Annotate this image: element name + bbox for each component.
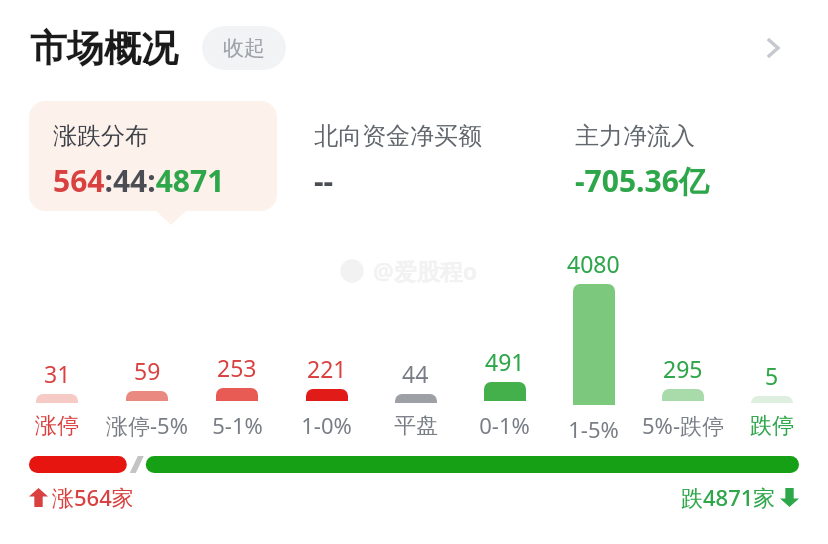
button[interactable]: 491 xyxy=(460,346,549,440)
button[interactable]: 涨跌分布 xyxy=(29,101,277,211)
button[interactable]: 5 xyxy=(727,360,816,440)
staticText: 564:44:4871 xyxy=(53,160,225,201)
button[interactable]: 4080 xyxy=(549,248,638,440)
staticText: 44 xyxy=(402,358,429,389)
staticText: 跌4871家 xyxy=(681,482,776,512)
staticText: 31 xyxy=(44,358,71,389)
staticText: @爱股程o xyxy=(373,255,478,286)
staticText: 涨停-5% xyxy=(106,410,188,440)
staticText: 跌停 xyxy=(750,412,794,440)
staticText: 0-1% xyxy=(479,410,530,440)
staticText: 1-5% xyxy=(568,414,619,440)
staticText: -- xyxy=(314,160,334,201)
button[interactable]: 44 xyxy=(371,358,460,440)
staticText: 1-0% xyxy=(301,410,352,440)
staticText: 491 xyxy=(485,346,525,377)
staticText: 221 xyxy=(307,353,347,384)
button[interactable]: 北向资金净买额 xyxy=(290,101,538,211)
button[interactable]: 295 xyxy=(638,353,727,440)
staticText: 295 xyxy=(663,353,703,384)
button[interactable]: 59 xyxy=(102,355,192,440)
staticText: 平盘 xyxy=(394,412,438,440)
staticText: 涨停 xyxy=(35,412,79,440)
staticText: 5 xyxy=(765,360,779,391)
button[interactable]: 221 xyxy=(282,353,371,440)
staticText: 59 xyxy=(134,355,161,386)
staticText: 4080 xyxy=(567,248,620,279)
staticText: -705.36亿 xyxy=(575,160,709,201)
button[interactable]: 查看更多 xyxy=(746,22,798,74)
staticText: 北向资金净买额 xyxy=(314,121,482,151)
button[interactable]: 收起 xyxy=(202,26,286,70)
staticText: 5%-跌停 xyxy=(642,410,724,440)
staticText: 市场概况 xyxy=(30,25,178,72)
button[interactable]: 主力净流入 xyxy=(551,101,799,211)
staticText: 5-1% xyxy=(212,410,263,440)
button[interactable]: 253 xyxy=(192,352,282,440)
staticText: 253 xyxy=(217,352,257,383)
button[interactable]: 31 xyxy=(12,358,102,440)
staticText: 收起 xyxy=(223,35,265,61)
staticText: 涨跌分布 xyxy=(53,121,149,151)
staticText: 主力净流入 xyxy=(575,121,695,151)
staticText: 涨564家 xyxy=(52,482,134,512)
